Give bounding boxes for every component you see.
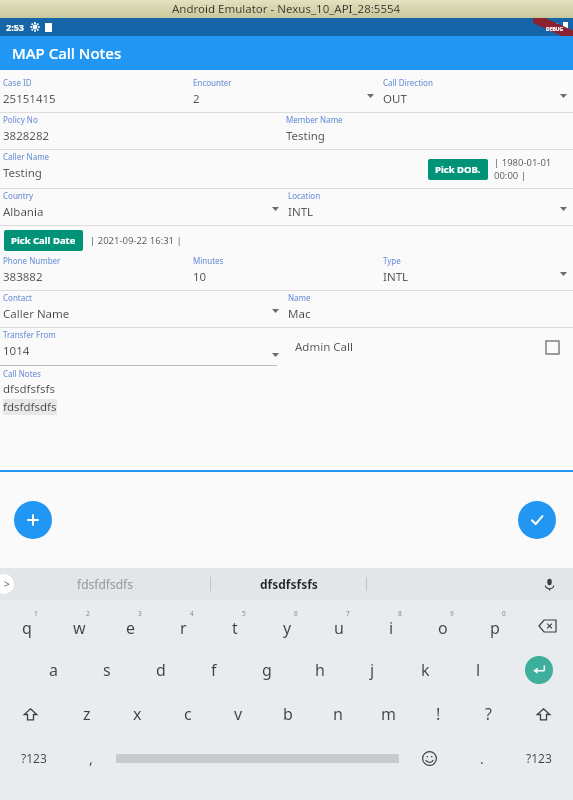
button[interactable]: !	[413, 692, 463, 736]
staticText: j	[370, 659, 375, 681]
staticText: ,	[89, 749, 93, 768]
staticText: v	[234, 703, 243, 725]
button[interactable]: k	[399, 648, 452, 692]
staticText: Case ID	[3, 77, 32, 88]
staticText: s	[103, 659, 111, 681]
staticText: Location	[288, 190, 321, 201]
staticText: Minutes	[193, 255, 224, 266]
staticText: d	[156, 659, 166, 681]
button[interactable]: Pick DOB.	[428, 159, 488, 180]
button[interactable]: ?123	[505, 736, 573, 780]
staticText: 25151415	[3, 91, 56, 107]
staticText: e	[126, 617, 136, 639]
button[interactable]: o	[417, 604, 469, 648]
button[interactable]: Contact	[0, 291, 285, 322]
button[interactable]: t	[209, 604, 261, 648]
button[interactable]: Minutes	[190, 254, 380, 285]
staticText: MAP Call Notes	[12, 43, 122, 63]
button[interactable]: j	[346, 648, 399, 692]
button[interactable]: Encounter	[190, 76, 380, 107]
button[interactable]: b	[263, 692, 313, 736]
button[interactable]: z	[61, 692, 112, 736]
staticText: u	[334, 617, 344, 639]
button[interactable]: Type	[380, 254, 573, 285]
button[interactable]: Country	[0, 189, 285, 220]
button[interactable]: g	[240, 648, 293, 692]
staticText: ?123	[526, 750, 552, 766]
button[interactable]: ?	[463, 692, 513, 736]
button[interactable]: s	[80, 648, 134, 692]
button[interactable]: Shift	[513, 692, 573, 736]
button[interactable]: Emoji	[401, 736, 458, 780]
button[interactable]: c	[163, 692, 213, 736]
button[interactable]: x	[112, 692, 163, 736]
button[interactable]: Member Name	[283, 113, 573, 144]
button[interactable]: l	[452, 648, 505, 692]
button[interactable]: .	[458, 736, 505, 780]
button[interactable]: More suggestions	[0, 574, 14, 594]
button[interactable]: y	[261, 604, 313, 648]
staticText: w	[73, 617, 86, 639]
staticText: OUT	[383, 91, 407, 107]
button[interactable]: f	[187, 648, 240, 692]
staticText: 6	[294, 609, 298, 618]
staticText: dfsdfsfsfs	[3, 381, 56, 397]
button[interactable]: m	[363, 692, 413, 736]
staticText: Type	[383, 255, 401, 266]
staticText: 383882	[3, 269, 43, 285]
staticText: c	[184, 703, 192, 725]
staticText: Testing	[286, 128, 325, 144]
button[interactable]: Caller Name	[0, 150, 420, 181]
staticText: 3	[138, 609, 142, 618]
staticText: n	[333, 703, 343, 725]
button[interactable]: Transfer From	[0, 328, 285, 366]
staticText: q	[22, 617, 32, 639]
button[interactable]: a	[26, 648, 80, 692]
staticText: Pick DOB.	[435, 163, 481, 176]
button[interactable]: n	[313, 692, 363, 736]
button[interactable]: q	[0, 604, 53, 648]
staticText: Mac	[288, 306, 311, 322]
staticText: Pick Call Date	[11, 234, 76, 247]
button[interactable]: v	[213, 692, 263, 736]
button[interactable]: e	[105, 604, 157, 648]
button[interactable]: u	[313, 604, 365, 648]
staticText: ?	[485, 703, 492, 725]
staticText: 4	[190, 609, 194, 618]
button[interactable]: Case ID	[0, 76, 190, 107]
button[interactable]: w	[53, 604, 105, 648]
button[interactable]: Add	[14, 501, 52, 539]
staticText: 2	[86, 609, 90, 618]
button[interactable]: Backspace	[521, 604, 573, 648]
button[interactable]: Policy No	[0, 113, 283, 144]
button[interactable]: Admin Call	[285, 328, 573, 366]
button[interactable]: Space	[114, 736, 401, 780]
button[interactable]: fdsfdfsdfs	[0, 576, 210, 592]
staticText: !	[436, 703, 441, 725]
button[interactable]: Location	[285, 189, 573, 220]
button[interactable]: i	[365, 604, 417, 648]
button[interactable]: Pick Call Date	[4, 230, 83, 251]
staticText: p	[490, 617, 500, 639]
button[interactable]: p	[469, 604, 521, 648]
button[interactable]: ,	[67, 736, 114, 780]
button[interactable]: Shift	[0, 692, 61, 736]
button[interactable]: ?123	[0, 736, 67, 780]
staticText: | 1980-01-01 00:00 |	[494, 156, 573, 182]
staticText: b	[283, 703, 293, 725]
button[interactable]: Name	[285, 291, 573, 322]
staticText: z	[83, 703, 91, 725]
button[interactable]: Call Direction	[380, 76, 573, 107]
button[interactable]: r	[157, 604, 209, 648]
button[interactable]: d	[134, 648, 187, 692]
button[interactable]: Save	[518, 501, 556, 539]
button[interactable]: h	[293, 648, 346, 692]
button[interactable]: Enter	[505, 648, 573, 692]
staticText: >	[4, 577, 10, 591]
button[interactable]: Voice input	[539, 574, 559, 594]
staticText: Policy No	[3, 114, 38, 125]
staticText: Caller Name	[3, 151, 50, 162]
staticText: Encounter	[193, 77, 232, 88]
button[interactable]: dfsdfsfsfs	[211, 576, 366, 592]
button[interactable]: Phone Number	[0, 254, 190, 285]
